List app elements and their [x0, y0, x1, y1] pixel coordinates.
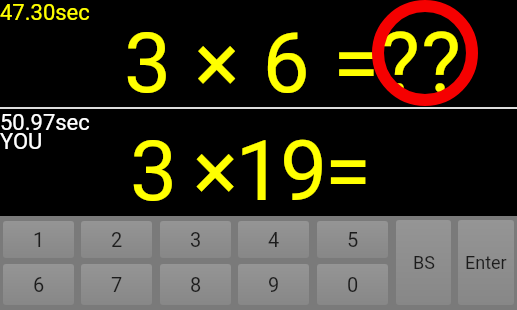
- button[interactable]: BS: [396, 220, 451, 305]
- button[interactable]: 2: [81, 221, 152, 258]
- button[interactable]: 8: [160, 264, 231, 305]
- button[interactable]: Enter: [458, 220, 514, 305]
- staticText: 4: [268, 228, 280, 251]
- button[interactable]: 5: [317, 221, 388, 258]
- staticText: BS: [413, 252, 435, 273]
- staticText: 6: [33, 273, 45, 296]
- button[interactable]: 7: [81, 264, 152, 305]
- staticText: 50.97sec: [0, 110, 90, 136]
- button[interactable]: 4: [238, 221, 309, 258]
- staticText: 9: [268, 273, 280, 296]
- staticText: 7: [111, 273, 123, 296]
- button[interactable]: 1: [3, 221, 74, 258]
- staticText: 5: [347, 228, 359, 251]
- staticText: 2: [111, 228, 123, 251]
- staticText: 3: [190, 228, 202, 251]
- staticText: 47.30sec: [0, 0, 90, 26]
- staticText: 3 ×19=: [130, 122, 369, 220]
- button[interactable]: 6: [3, 264, 74, 305]
- staticText: 8: [190, 273, 202, 296]
- button[interactable]: 0: [317, 264, 388, 305]
- staticText: 1: [33, 228, 45, 251]
- button[interactable]: 3: [160, 221, 231, 258]
- button[interactable]: 9: [238, 264, 309, 305]
- staticText: 3 × 6 =??: [124, 14, 463, 112]
- staticText: Enter: [465, 252, 507, 273]
- staticText: 0: [347, 273, 359, 296]
- staticText: YOU: [0, 129, 43, 155]
